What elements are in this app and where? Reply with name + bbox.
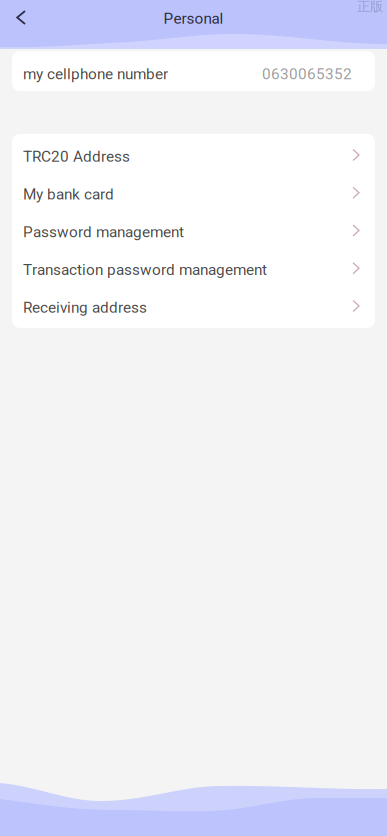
staticText: 0630065352 [262, 65, 352, 83]
button[interactable]: Back [0, 0, 38, 37]
staticText: 正版 [357, 0, 383, 15]
staticText: Receiving address [23, 298, 147, 316]
staticText: my cellphone number [23, 65, 168, 83]
button[interactable]: TRC20 Address [12, 137, 375, 174]
staticText: TRC20 Address [23, 147, 130, 165]
staticText: Personal [163, 9, 223, 27]
button[interactable]: Receiving address [12, 288, 375, 325]
button[interactable]: Password management [12, 212, 375, 250]
staticText: Password management [23, 223, 184, 241]
staticText: My bank card [23, 185, 114, 203]
button[interactable]: My bank card [12, 174, 375, 212]
button[interactable]: Transaction password management [12, 250, 375, 288]
staticText: Transaction password management [23, 261, 267, 279]
